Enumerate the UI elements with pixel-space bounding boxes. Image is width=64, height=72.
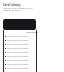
button[interactable]: Item name and detail xyxy=(0,58,64,62)
staticText: Item name and detail xyxy=(7,39,29,42)
staticText: Item name and detail xyxy=(7,43,29,46)
button[interactable]: Item name and detail xyxy=(0,34,64,38)
staticText: Item name and detail xyxy=(7,51,29,54)
button[interactable]: Item name and detail xyxy=(0,42,64,46)
button[interactable]: Item name and detail xyxy=(0,54,64,58)
staticText: Item name and detail xyxy=(7,47,29,50)
staticText: Item name and detail xyxy=(7,63,29,66)
staticText: Card Name xyxy=(26,31,38,34)
staticText: See our most notable cards xyxy=(3,7,33,10)
staticText: Item name and detail xyxy=(7,59,29,62)
staticText: Card Library xyxy=(3,3,21,7)
staticText: Item name and detail xyxy=(7,35,29,38)
staticText: created by users xyxy=(3,9,21,12)
staticText: Item name and detail xyxy=(7,55,29,58)
button[interactable]: Item name and detail xyxy=(0,38,64,42)
button[interactable]: Item name and detail xyxy=(0,50,64,54)
staticText: Item name and detail xyxy=(7,67,29,70)
button[interactable]: Item name and detail xyxy=(0,66,64,70)
button[interactable]: Item name and detail xyxy=(0,46,64,50)
button[interactable]: Item name and detail xyxy=(0,62,64,66)
button[interactable] xyxy=(3,19,36,30)
